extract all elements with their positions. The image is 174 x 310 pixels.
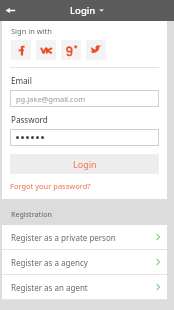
button[interactable]: Login [70, 4, 104, 17]
staticText: pg.jake@gmail.com [16, 94, 86, 104]
button[interactable]: Sign in with Facebook [11, 40, 31, 60]
staticText: Login [70, 4, 96, 17]
staticText: Register as an agent [11, 282, 88, 293]
staticText: Sign in with [11, 26, 52, 36]
button[interactable]: pg.jake@gmail.com [10, 90, 159, 107]
staticText: Register as a agency [11, 257, 88, 268]
button[interactable]: Register as a private person [2, 225, 167, 249]
staticText: Login [73, 158, 97, 170]
button[interactable]: Register as a agency [2, 250, 167, 274]
staticText: Password [11, 114, 48, 125]
button[interactable]: Forgot your password? [10, 181, 91, 191]
staticText: Register as a private person [11, 232, 116, 243]
button[interactable]: Register as an agent [2, 275, 167, 299]
button[interactable]: Sign in with VK [36, 40, 56, 60]
button[interactable]: Login [10, 154, 159, 174]
button[interactable] [10, 129, 159, 146]
button[interactable]: Sign in with Google Plus [61, 40, 81, 60]
staticText: Forgot your password? [10, 181, 91, 191]
staticText: Registration [11, 210, 52, 220]
button[interactable]: Back [0, 0, 21, 21]
staticText: Email [11, 75, 32, 86]
button[interactable]: Sign in with Twitter [86, 40, 106, 60]
